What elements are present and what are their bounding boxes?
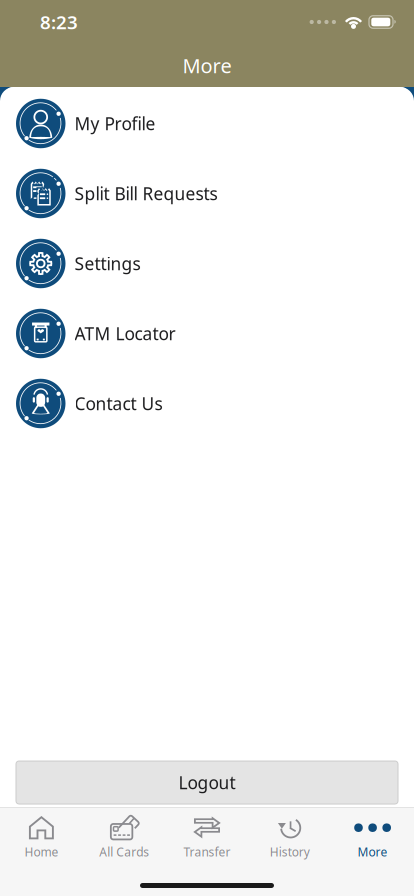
button[interactable]: Split Bill Requests [0, 158, 414, 228]
button[interactable]: My Profile [0, 88, 414, 158]
staticText: Logout [178, 771, 235, 794]
staticText: Split Bill Requests [74, 182, 217, 205]
staticText: Home [24, 844, 58, 860]
button[interactable]: Home [0, 808, 83, 860]
button[interactable]: More [331, 808, 414, 860]
button[interactable]: ATM Locator [0, 298, 414, 368]
staticText: More [182, 52, 231, 79]
button[interactable]: Contact Us [0, 368, 414, 438]
staticText: More [358, 844, 388, 860]
staticText: Settings [74, 252, 140, 275]
staticText: My Profile [74, 112, 155, 135]
staticText: All Cards [99, 844, 149, 860]
button[interactable]: Settings [0, 228, 414, 298]
staticText: 8:23 [40, 10, 78, 34]
button[interactable]: History [248, 808, 331, 860]
staticText: History [270, 844, 310, 860]
button[interactable]: Logout [16, 761, 398, 804]
staticText: Contact Us [74, 392, 162, 415]
staticText: Transfer [183, 844, 230, 860]
staticText: ATM Locator [74, 322, 175, 345]
button[interactable]: Transfer [166, 808, 248, 860]
button[interactable]: All Cards [83, 808, 166, 860]
